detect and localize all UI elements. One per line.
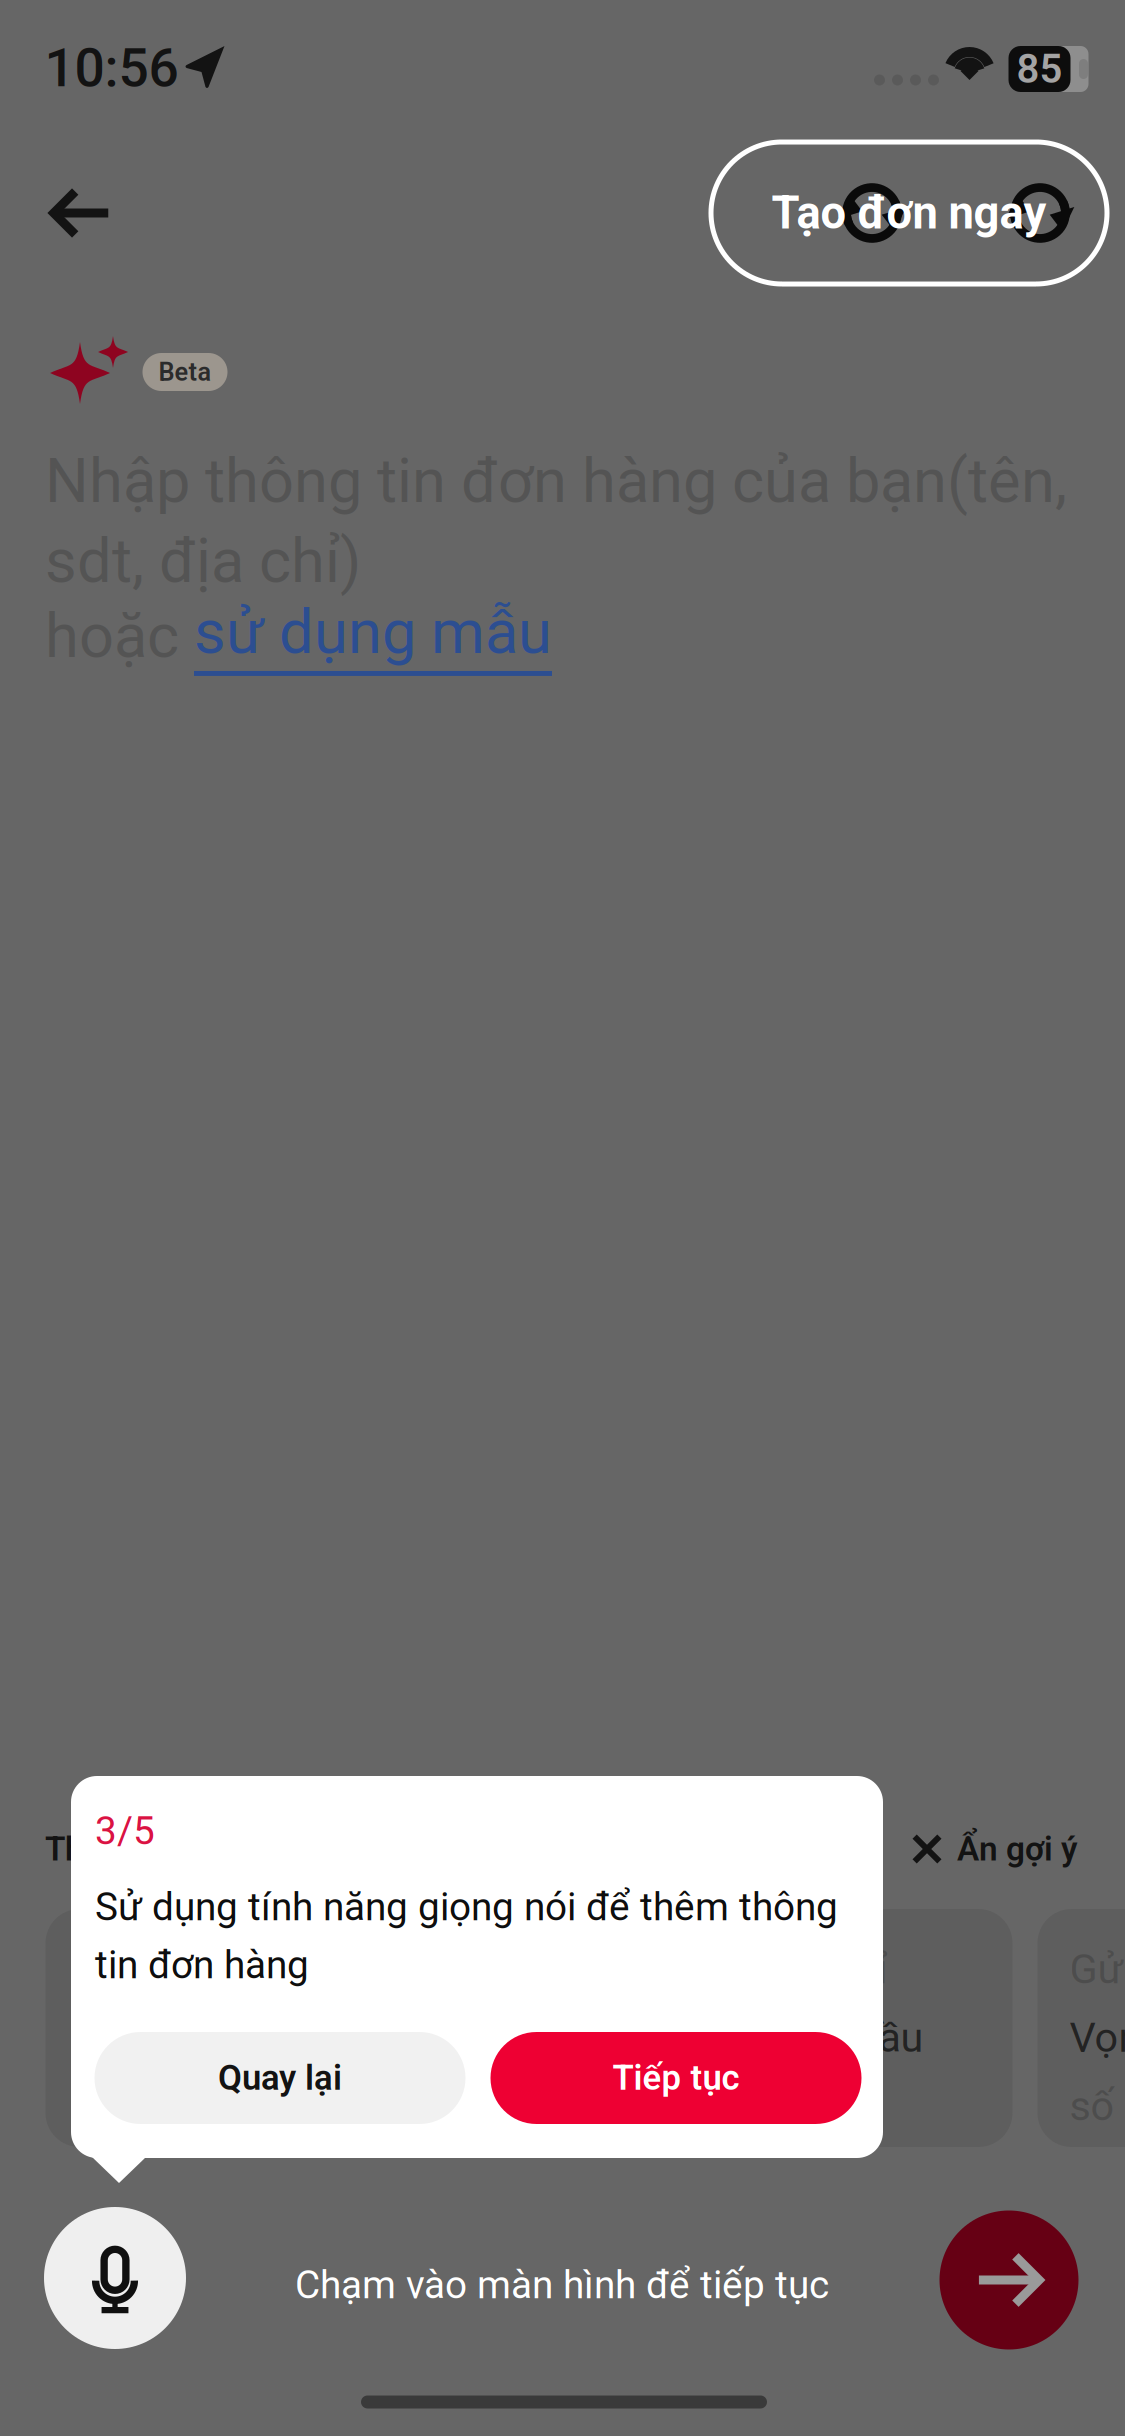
- button[interactable]: Tiếp tục: [490, 2032, 861, 2124]
- staticText: 3/5: [95, 1808, 155, 1854]
- button[interactable]: Back: [22, 154, 140, 272]
- staticText: giao hàng mặc đầu: [573, 2013, 923, 2062]
- button[interactable]: Next: [939, 2210, 1078, 2349]
- staticText: hoặc: [45, 600, 194, 672]
- staticText: Tiếp tục: [612, 2058, 739, 2098]
- button[interactable]: Gửi tin nhắn: [1037, 1909, 1125, 2147]
- button[interactable]: Thêm vào địa chỉ: [541, 1909, 1012, 2147]
- button[interactable]: Voice input: [44, 2207, 186, 2349]
- staticText: sdt, địa chỉ): [45, 525, 361, 597]
- staticText: Thêm gợi ý: [45, 1829, 211, 1869]
- staticText: Quay lại: [218, 2058, 342, 2098]
- staticText: tin đơn hàng: [95, 1942, 309, 1988]
- button[interactable]: Thêm thông tin: [45, 1909, 516, 2147]
- staticText: Nhập thông tin đơn hàng của bạn(tên,: [45, 445, 1067, 517]
- staticText: Sử dụng tính năng giọng nói để thêm thôn…: [95, 1884, 838, 1930]
- button[interactable]: sử dụng mẫu: [194, 596, 552, 676]
- staticText: Beta: [158, 357, 211, 387]
- staticText: Thêm thông tin: [77, 1945, 357, 1993]
- staticText: Tạo đơn ngay: [771, 186, 1046, 239]
- staticText: Ẩn gợi ý: [957, 1829, 1078, 1869]
- button[interactable]: Quay lại: [94, 2032, 465, 2124]
- button[interactable]: Tạo đơn ngay: [711, 142, 1107, 284]
- staticText: Vọng xác nhận: [1069, 2013, 1125, 2062]
- staticText: số điện thoại: [1069, 2082, 1125, 2130]
- staticText: Chạm vào màn hình để tiếp tục: [295, 2262, 829, 2308]
- staticText: Gửi tin nhắn: [1069, 1945, 1125, 1993]
- staticText: 85: [1016, 46, 1062, 92]
- button[interactable]: Ẩn gợi ý: [828, 1819, 1078, 1879]
- staticText: 10:56: [44, 37, 178, 99]
- staticText: sử dụng mẫu: [194, 596, 552, 668]
- staticText: khách hàng: [77, 2013, 289, 2062]
- staticText: Thêm vào địa chỉ: [573, 1945, 887, 1993]
